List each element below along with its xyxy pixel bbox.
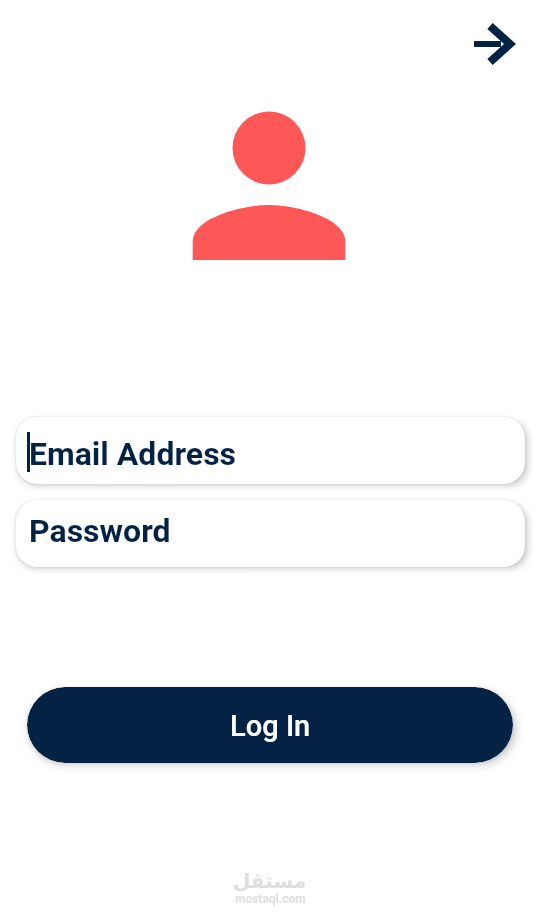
button[interactable]: Password <box>16 500 525 567</box>
staticText: mostaql.com <box>235 892 306 906</box>
staticText: Password <box>29 512 171 550</box>
staticText: Email Address <box>29 435 237 473</box>
staticText: مستقل <box>233 869 307 892</box>
button[interactable]: Email Address <box>16 417 525 484</box>
staticText: Log In <box>230 709 311 743</box>
button[interactable]: Log In <box>27 687 513 763</box>
button[interactable] <box>466 16 522 72</box>
